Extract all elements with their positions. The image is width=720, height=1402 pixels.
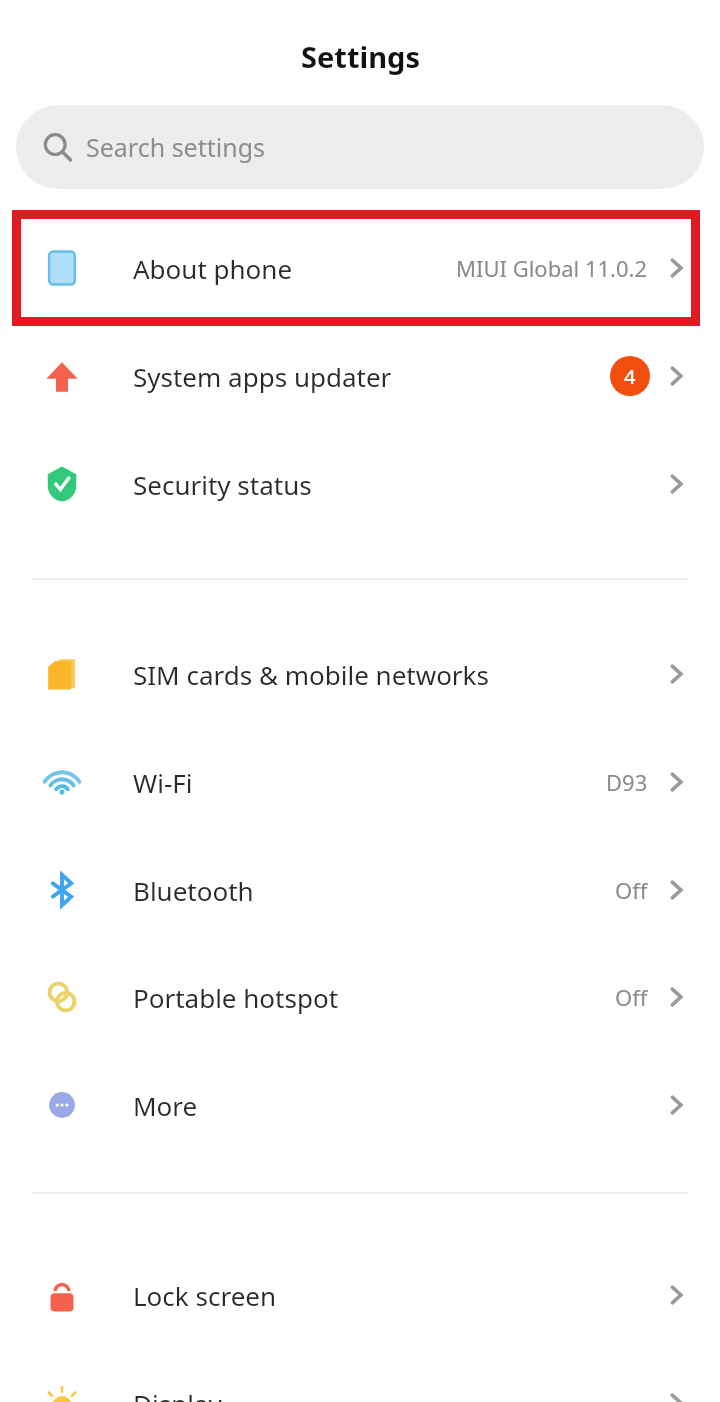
button[interactable]: Lock screen	[0, 1241, 720, 1349]
staticText: 4	[624, 363, 636, 390]
button[interactable]: Bluetooth	[0, 836, 720, 944]
staticText: Wi-Fi	[133, 765, 193, 800]
staticText: Bluetooth	[133, 873, 254, 908]
button[interactable]: More	[0, 1051, 720, 1159]
staticText: About phone	[133, 251, 293, 286]
staticText: Off	[615, 875, 648, 905]
staticText: D93	[606, 767, 648, 797]
button[interactable]: Display	[0, 1349, 720, 1402]
staticText: Portable hotspot	[133, 980, 339, 1015]
button[interactable]: Wi-Fi	[0, 728, 720, 836]
button[interactable]: SIM cards & mobile networks	[0, 620, 720, 728]
button[interactable]: Search settings	[16, 105, 704, 189]
staticText: System apps updater	[133, 359, 392, 394]
staticText: Lock screen	[133, 1278, 277, 1313]
staticText: MIUI Global 11.0.2	[456, 253, 648, 283]
button[interactable]: System apps updater	[0, 322, 720, 430]
staticText: More	[133, 1088, 198, 1123]
button[interactable]: Portable hotspot	[0, 943, 720, 1051]
staticText: Off	[615, 982, 648, 1012]
staticText: Display	[133, 1386, 222, 1402]
staticText: Search settings	[86, 130, 266, 164]
button[interactable]: Security status	[0, 430, 720, 538]
staticText: Settings	[301, 37, 420, 76]
button[interactable]: About phone	[0, 214, 720, 322]
staticText: SIM cards & mobile networks	[133, 657, 489, 692]
staticText: Security status	[133, 467, 312, 502]
